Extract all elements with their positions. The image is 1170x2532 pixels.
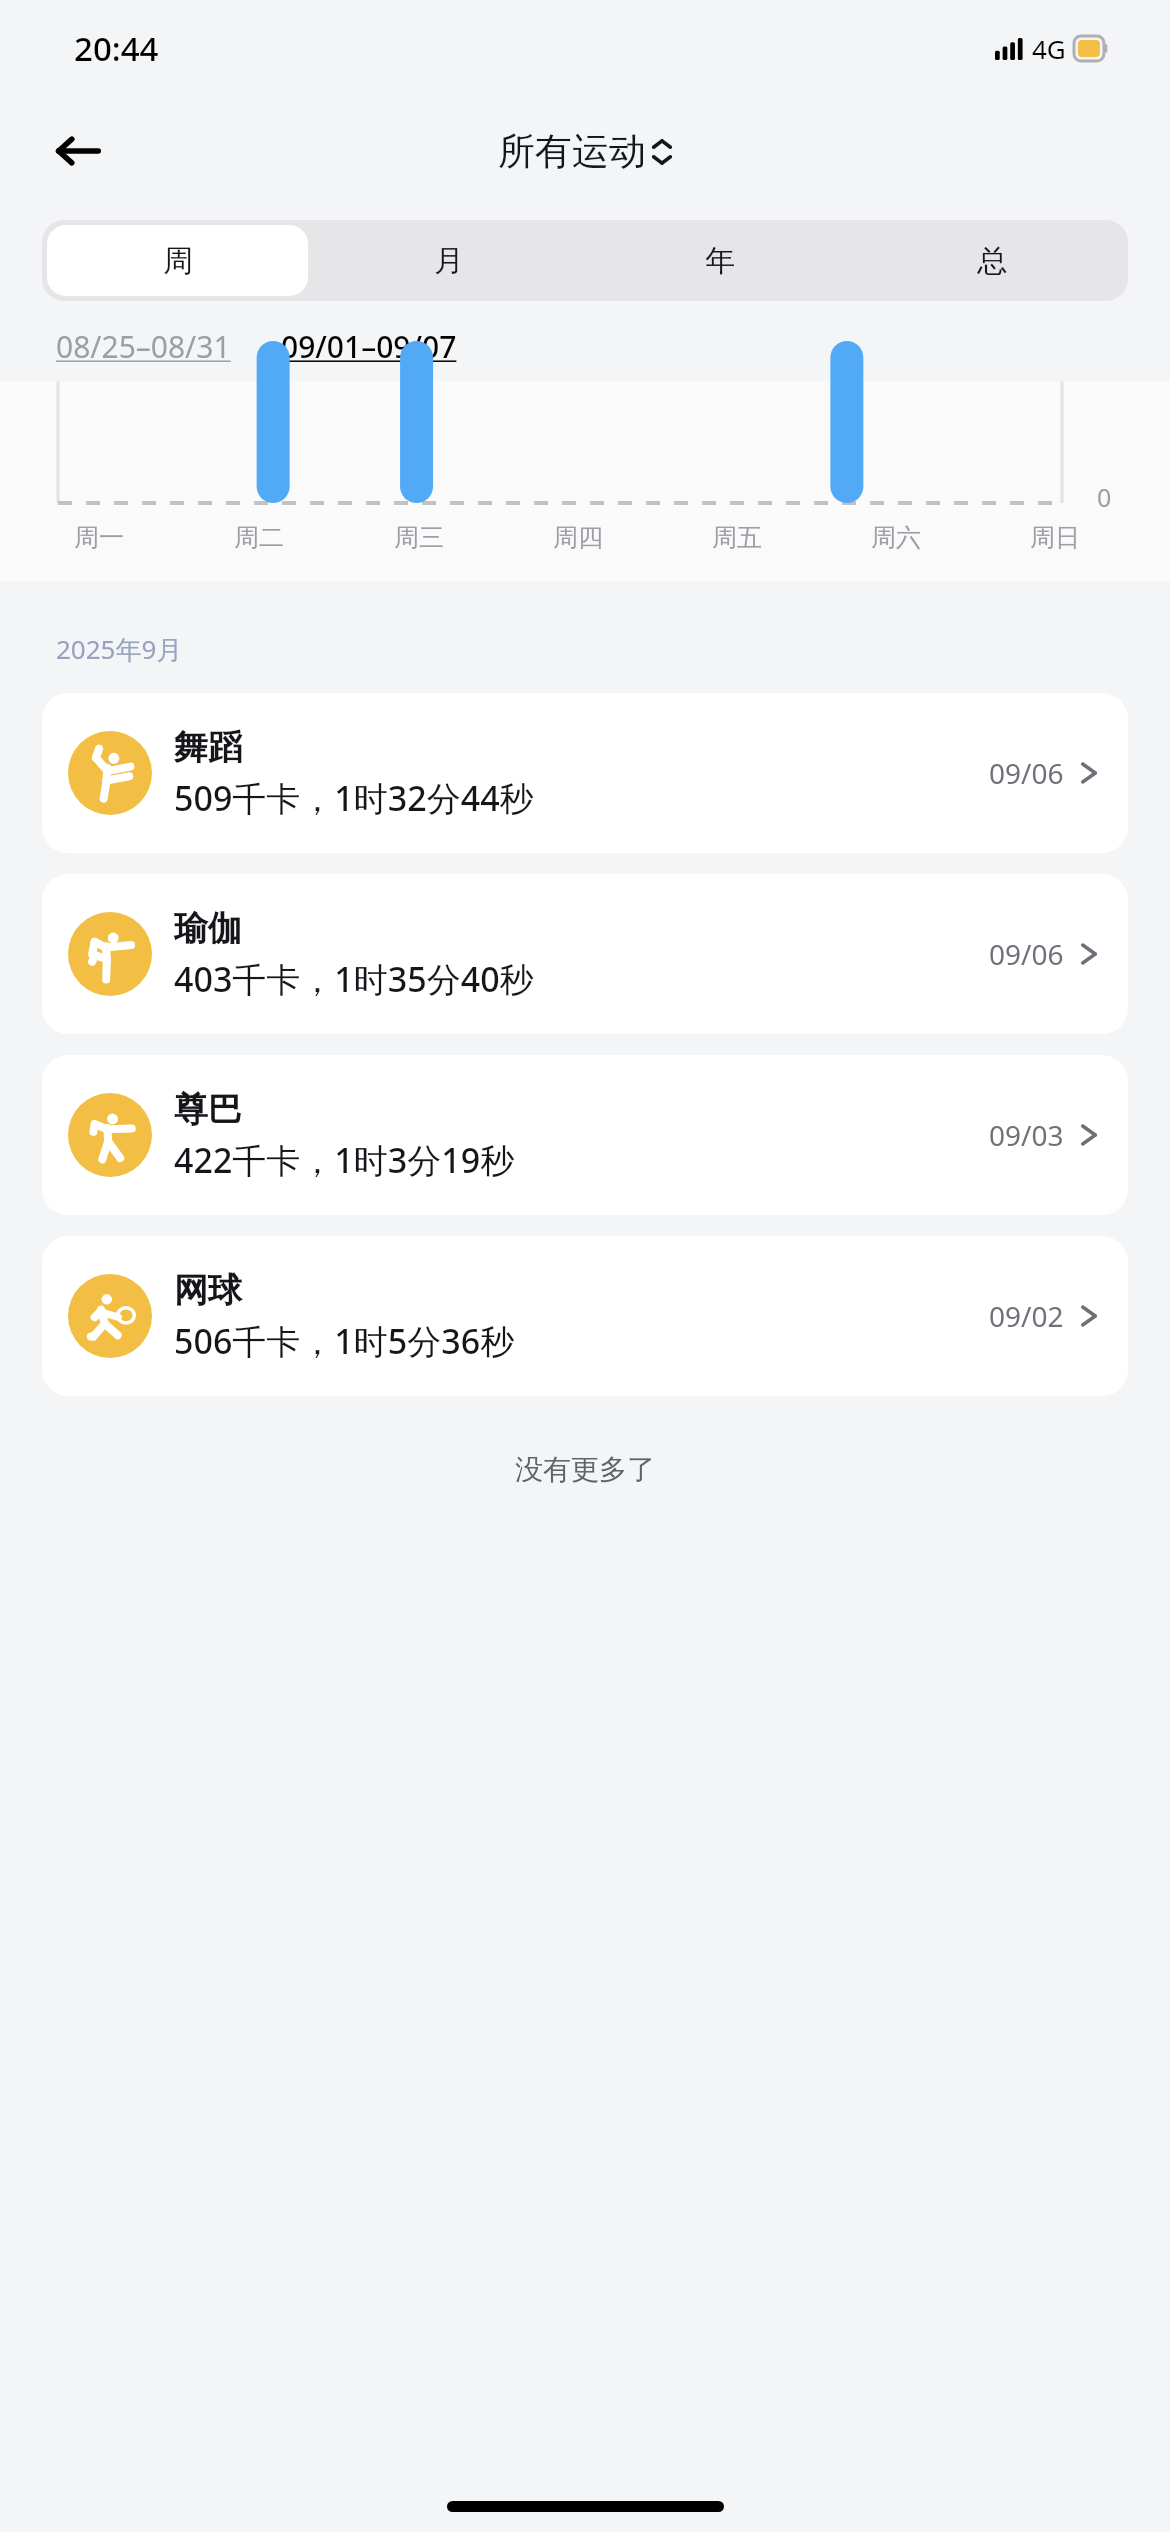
staticText: 09/06 (989, 935, 1064, 973)
staticText: 09/02 (989, 1297, 1064, 1335)
staticText: 08/25–08/31 (56, 326, 231, 367)
staticText: 周一 (74, 522, 124, 553)
staticText: 506千卡，1时5分36秒 (174, 1318, 515, 1364)
staticText: 09/01–09/07 (281, 326, 457, 367)
button[interactable]: 总 (861, 225, 1123, 296)
button[interactable]: 网球 (42, 1236, 1128, 1396)
staticText: 周日 (1030, 522, 1080, 553)
staticText: 509千卡，1时32分44秒 (174, 775, 534, 821)
staticText: 周六 (871, 522, 921, 553)
staticText: 所有运动 (498, 128, 646, 175)
staticText: 2025年9月 (56, 631, 183, 667)
staticText: 403千卡，1时35分40秒 (174, 956, 534, 1002)
button[interactable]: 所有运动 (498, 128, 672, 175)
staticText: 4G (1032, 31, 1066, 66)
button[interactable]: Back (48, 121, 108, 181)
button[interactable]: 周 (47, 225, 308, 296)
staticText: 总 (977, 242, 1007, 280)
staticText: 09/06 (989, 754, 1064, 792)
staticText: 周二 (234, 522, 284, 553)
button[interactable]: 09/01–09/07 (281, 326, 457, 367)
staticText: 月 (434, 242, 464, 280)
staticText: 0 (1097, 480, 1112, 514)
staticText: 20:44 (74, 26, 159, 71)
button[interactable]: 08/25–08/31 (56, 326, 231, 367)
staticText: 周 (163, 242, 193, 280)
button[interactable]: 月 (318, 225, 579, 296)
staticText: 网球 (174, 1269, 242, 1312)
button[interactable]: 尊巴 (42, 1055, 1128, 1215)
staticText: 年 (705, 242, 735, 280)
staticText: 周三 (394, 522, 444, 553)
staticText: 09/03 (989, 1116, 1064, 1154)
staticText: 瑜伽 (174, 907, 242, 950)
button[interactable]: 瑜伽 (42, 874, 1128, 1034)
staticText: 周四 (553, 522, 603, 553)
staticText: 422千卡，1时3分19秒 (174, 1137, 515, 1183)
button[interactable]: 年 (589, 225, 851, 296)
staticText: 舞蹈 (174, 726, 242, 769)
staticText: 尊巴 (174, 1088, 242, 1131)
staticText: 周五 (712, 522, 762, 553)
staticText: 没有更多了 (0, 1452, 1170, 1487)
button[interactable]: 舞蹈 (42, 693, 1128, 853)
